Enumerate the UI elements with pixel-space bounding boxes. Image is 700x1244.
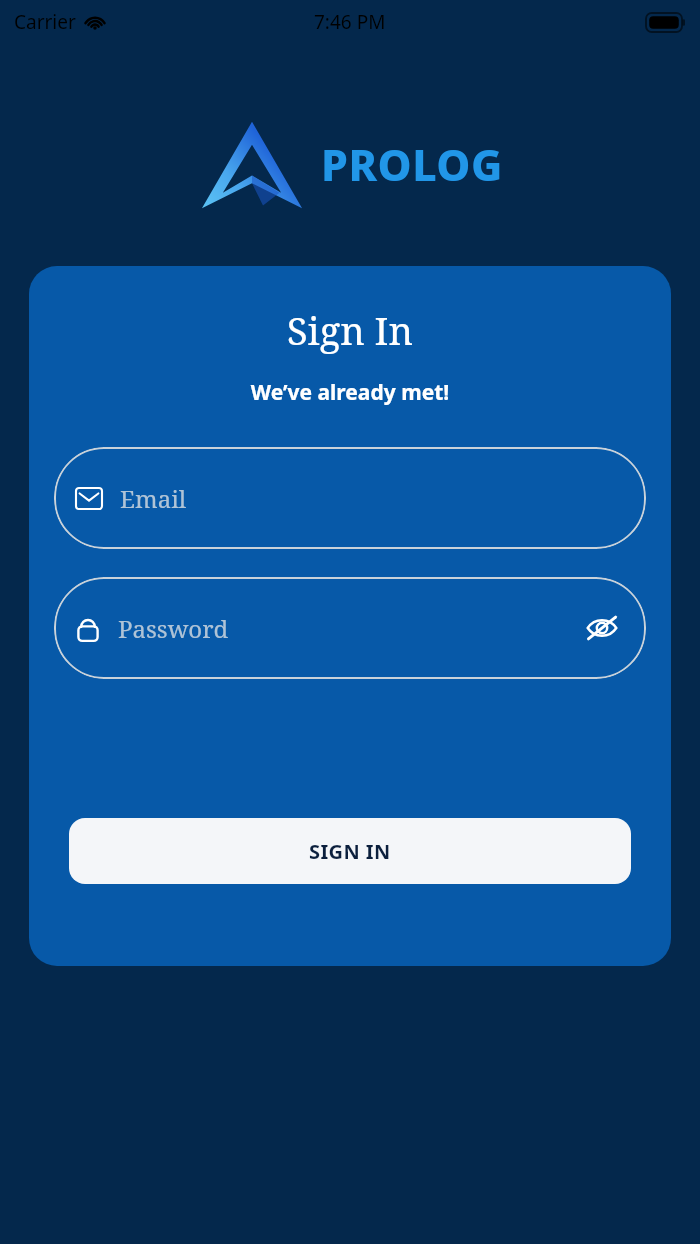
staticText: SIGN IN (309, 838, 391, 865)
staticText: Email (120, 482, 624, 515)
staticText: Sign In (54, 304, 646, 356)
staticText: PROLOG (321, 135, 503, 194)
staticText: 7:46 PM (314, 9, 386, 35)
staticText: We’ve already met! (54, 378, 646, 407)
button[interactable]: Show password (580, 606, 624, 650)
button[interactable]: Email (54, 447, 646, 549)
button[interactable]: Password (54, 577, 646, 679)
button[interactable]: SIGN IN (69, 818, 631, 884)
staticText: Carrier (14, 9, 76, 35)
staticText: Password (118, 612, 580, 645)
